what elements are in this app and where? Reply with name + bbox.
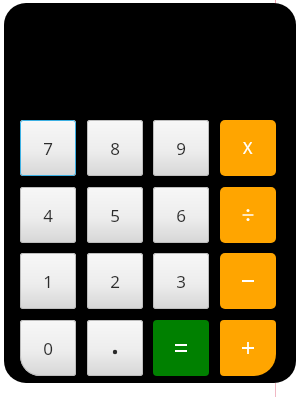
button[interactable]: Divide (220, 187, 276, 243)
button[interactable]: Subtract (220, 253, 276, 309)
staticText: 6 (176, 204, 186, 227)
staticText: 8 (110, 137, 120, 160)
button[interactable]: 1 (20, 253, 76, 309)
button[interactable]: 0 (20, 320, 76, 376)
button[interactable]: 6 (153, 187, 209, 243)
staticText: X (243, 137, 253, 159)
button[interactable]: 7 (20, 120, 76, 176)
button[interactable]: Multiply (220, 120, 276, 176)
staticText: 4 (43, 204, 53, 227)
staticText: 2 (110, 270, 120, 293)
staticText: 1 (43, 270, 53, 293)
staticText: 3 (176, 270, 186, 293)
button[interactable]: 5 (87, 187, 143, 243)
staticText: 0 (43, 337, 53, 360)
button[interactable] (87, 320, 143, 376)
button[interactable]: 2 (87, 253, 143, 309)
button[interactable]: 9 (153, 120, 209, 176)
staticText: 9 (176, 137, 186, 160)
button[interactable]: 4 (20, 187, 76, 243)
staticText: 5 (110, 204, 120, 227)
staticText: 7 (43, 137, 53, 160)
button[interactable]: Add (220, 320, 276, 376)
button[interactable]: 8 (87, 120, 143, 176)
button[interactable]: Equals (153, 320, 209, 376)
button[interactable]: 3 (153, 253, 209, 309)
